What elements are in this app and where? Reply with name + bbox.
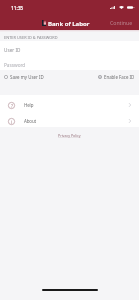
staticText: User ID [4,47,21,53]
button[interactable]: Save my User ID [4,73,44,81]
staticText: ? [11,103,13,109]
button[interactable]: Continue [108,17,135,28]
staticText: Password [4,62,26,68]
button[interactable]: Password [0,55,139,70]
button[interactable]: ? [0,95,139,111]
staticText: About [24,118,37,124]
button[interactable]: Privacy Policy [56,131,83,140]
staticText: ENTER USER ID & PASSWORD [4,35,58,40]
staticText: Help [24,102,34,108]
staticText: Bank of Labor [48,19,90,27]
button[interactable]: Enable Face ID [98,73,135,81]
staticText: Privacy Policy [58,133,81,138]
staticText: Enable Face ID [104,74,135,80]
staticText: i [11,119,13,125]
staticText: Save my User ID [10,74,44,80]
button[interactable]: i [0,111,139,127]
staticText: Continue [110,19,133,26]
staticText: 11:35 [11,5,24,12]
button[interactable]: User ID [0,41,139,55]
